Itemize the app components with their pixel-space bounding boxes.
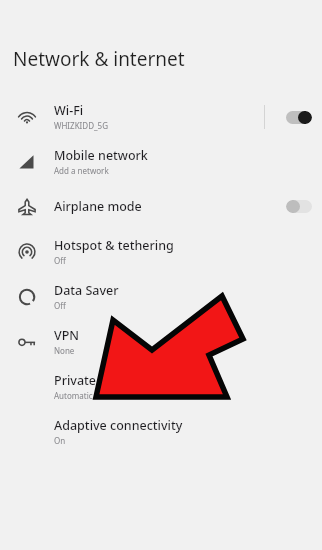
staticText: Airplane mode [54,198,142,215]
staticText: Wi-Fi [54,102,84,119]
staticText: Private DNS [54,372,125,389]
button[interactable]: Airplane mode [0,184,322,229]
button[interactable]: Private DNS [0,364,322,409]
staticText: Off [54,300,66,311]
button[interactable]: VPN [0,319,322,364]
staticText: Data Saver [54,282,119,299]
staticText: Automatic [54,390,93,401]
staticText: Hotspot & tethering [54,237,174,254]
button[interactable]: Toggle on [286,111,312,124]
staticText: Mobile network [54,147,148,164]
button[interactable]: Mobile network [0,139,322,184]
button[interactable]: Hotspot & tethering [0,229,322,274]
button[interactable]: Toggle off [286,200,312,213]
button[interactable]: Data Saver [0,274,322,319]
staticText: Adaptive connectivity [54,417,183,434]
staticText: Add a network [54,165,109,176]
staticText: Off [54,255,66,266]
staticText: Network & internet [13,46,185,72]
staticText: WHIZKIDD_5G [54,120,108,131]
button[interactable]: Wi-Fi [0,94,322,139]
staticText: VPN [54,327,80,344]
staticText: None [54,345,75,356]
button[interactable]: Adaptive connectivity [0,409,322,454]
staticText: On [54,435,66,446]
